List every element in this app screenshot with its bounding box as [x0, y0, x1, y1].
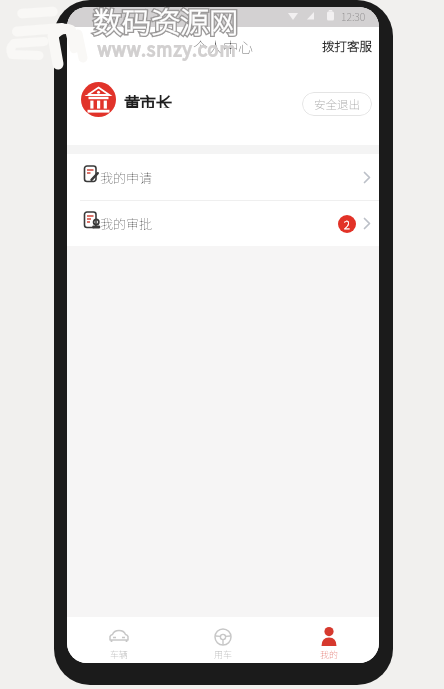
button[interactable]: 用车: [193, 617, 253, 663]
staticText: 我的申请: [100, 168, 153, 187]
staticText: 安全退出: [314, 96, 360, 113]
staticText: 拨打客服: [322, 36, 373, 54]
staticText: www.smzy.com: [98, 36, 237, 61]
button[interactable]: 车辆: [89, 617, 149, 663]
staticText: 用车: [214, 648, 233, 660]
button[interactable]: 安全退出: [302, 92, 372, 116]
staticText: 车辆: [110, 648, 129, 660]
button[interactable]: 我的: [299, 617, 359, 663]
staticText: 黄市长: [124, 90, 173, 108]
button[interactable]: 拨打客服: [315, 31, 379, 59]
staticText: 2: [344, 216, 350, 232]
staticText: 数码资源网: [93, 0, 239, 41]
button[interactable]: 我的申请: [67, 154, 379, 200]
staticText: 我的审批: [100, 214, 153, 233]
staticText: 拨打客服: [322, 36, 373, 54]
button[interactable]: 我的审批: [67, 201, 379, 246]
staticText: 数码资源网: [93, 0, 239, 41]
staticText: 个人中心: [193, 36, 254, 58]
staticText: 黄市长: [124, 90, 173, 108]
staticText: 我的: [320, 648, 339, 660]
staticText: 12:30: [341, 9, 366, 24]
